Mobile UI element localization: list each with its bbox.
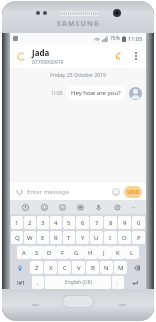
button[interactable]: Jada <box>32 47 112 66</box>
staticText: J <box>103 249 105 257</box>
staticText: G <box>74 249 79 257</box>
button[interactable]: Shift <box>11 261 29 274</box>
button[interactable]: G <box>69 246 83 259</box>
staticText: D <box>47 249 52 257</box>
button[interactable]: 7 <box>90 216 103 229</box>
staticText: W <box>27 234 33 242</box>
button[interactable]: L <box>125 246 139 259</box>
button[interactable]: , <box>32 276 44 289</box>
button[interactable]: N <box>100 261 113 274</box>
button[interactable]: I <box>104 231 117 244</box>
button[interactable]: K <box>111 246 125 259</box>
staticText: V <box>77 264 81 272</box>
staticText: 5 <box>67 219 71 227</box>
staticText: 2 <box>28 219 32 227</box>
staticText: B <box>91 264 95 272</box>
button[interactable]: Voice input <box>92 201 104 213</box>
button[interactable]: T <box>63 231 75 244</box>
button[interactable]: O <box>118 231 131 244</box>
staticText: E <box>41 234 45 242</box>
staticText: Z <box>35 264 39 272</box>
staticText: R <box>54 234 58 242</box>
button[interactable]: Hey how are you? <box>66 86 126 100</box>
button[interactable]: D <box>43 246 56 259</box>
staticText: 07700900919 <box>32 59 64 66</box>
staticText: Y <box>81 234 85 242</box>
button[interactable]: E <box>37 231 49 244</box>
button[interactable]: Contact photo <box>129 87 142 100</box>
staticText: C <box>63 264 67 272</box>
button[interactable]: Emoji <box>38 201 50 213</box>
staticText: S <box>35 249 39 257</box>
staticText: T <box>67 234 71 242</box>
button[interactable]: Clipboard <box>74 201 86 213</box>
staticText: F <box>61 249 65 257</box>
button[interactable]: Stickers <box>56 201 68 213</box>
button[interactable]: Expand <box>129 203 137 211</box>
button[interactable]: B <box>86 261 99 274</box>
staticText: K <box>116 249 120 257</box>
staticText: Q <box>15 234 20 242</box>
staticText: Jada <box>32 47 50 58</box>
staticText: U <box>94 234 99 242</box>
staticText: M <box>118 264 124 272</box>
button[interactable]: 5 <box>63 216 75 229</box>
button[interactable]: Home <box>62 295 94 308</box>
button[interactable]: X <box>44 261 57 274</box>
staticText: 4 <box>54 219 58 227</box>
staticText: Hey how are you? <box>71 89 121 97</box>
staticText: 1 <box>15 219 19 227</box>
button[interactable]: English (UK) <box>45 276 111 289</box>
button[interactable]: Call <box>112 48 129 65</box>
button[interactable]: F <box>56 246 69 259</box>
button[interactable]: Z <box>30 261 43 274</box>
button[interactable]: 0 <box>132 216 145 229</box>
button[interactable]: More options <box>129 49 143 63</box>
staticText: A <box>22 249 26 257</box>
staticText: English (UK) <box>65 279 92 286</box>
staticText: I <box>109 234 112 242</box>
button[interactable]: 2 <box>24 216 36 229</box>
button[interactable]: W <box>24 231 36 244</box>
button[interactable]: Enter message <box>27 188 110 196</box>
button[interactable]: Y <box>76 231 89 244</box>
button[interactable]: Settings <box>111 201 123 213</box>
staticText: 0 <box>137 219 141 227</box>
button[interactable]: SEND <box>124 186 142 198</box>
staticText: O <box>122 234 127 242</box>
staticText: SAMSUNG <box>57 19 100 29</box>
button[interactable]: !#1 <box>11 276 31 289</box>
button[interactable]: P <box>132 231 145 244</box>
button[interactable]: 3 <box>37 216 49 229</box>
button[interactable]: 4 <box>50 216 62 229</box>
button[interactable]: Back <box>13 48 29 64</box>
button[interactable]: 9 <box>118 216 131 229</box>
staticText: Friday, 25 October 2019 <box>10 72 146 79</box>
button[interactable]: S <box>30 246 43 259</box>
staticText: 11:05 <box>51 90 63 96</box>
button[interactable]: H <box>83 246 97 259</box>
button[interactable]: Backspace <box>128 261 145 274</box>
staticText: H <box>88 249 93 257</box>
button[interactable]: Enter <box>125 276 145 289</box>
button[interactable]: C <box>58 261 71 274</box>
button[interactable]: 8 <box>104 216 117 229</box>
button[interactable]: Attach <box>14 186 25 197</box>
staticText: 7 <box>95 219 99 227</box>
staticText: N <box>104 264 109 272</box>
button[interactable]: Emoji <box>110 186 122 198</box>
staticText: 9 <box>123 219 127 227</box>
button[interactable]: M <box>114 261 127 274</box>
button[interactable]: Q <box>11 231 23 244</box>
button[interactable]: . <box>112 276 124 289</box>
staticText: 76% <box>110 35 120 42</box>
button[interactable]: A <box>17 246 30 259</box>
button[interactable]: J <box>97 246 111 259</box>
button[interactable]: U <box>90 231 103 244</box>
button[interactable]: 1 <box>11 216 23 229</box>
button[interactable]: V <box>72 261 85 274</box>
button[interactable]: R <box>50 231 62 244</box>
button[interactable]: 6 <box>76 216 89 229</box>
staticText: 6 <box>81 219 85 227</box>
button[interactable]: Text size <box>19 201 31 213</box>
